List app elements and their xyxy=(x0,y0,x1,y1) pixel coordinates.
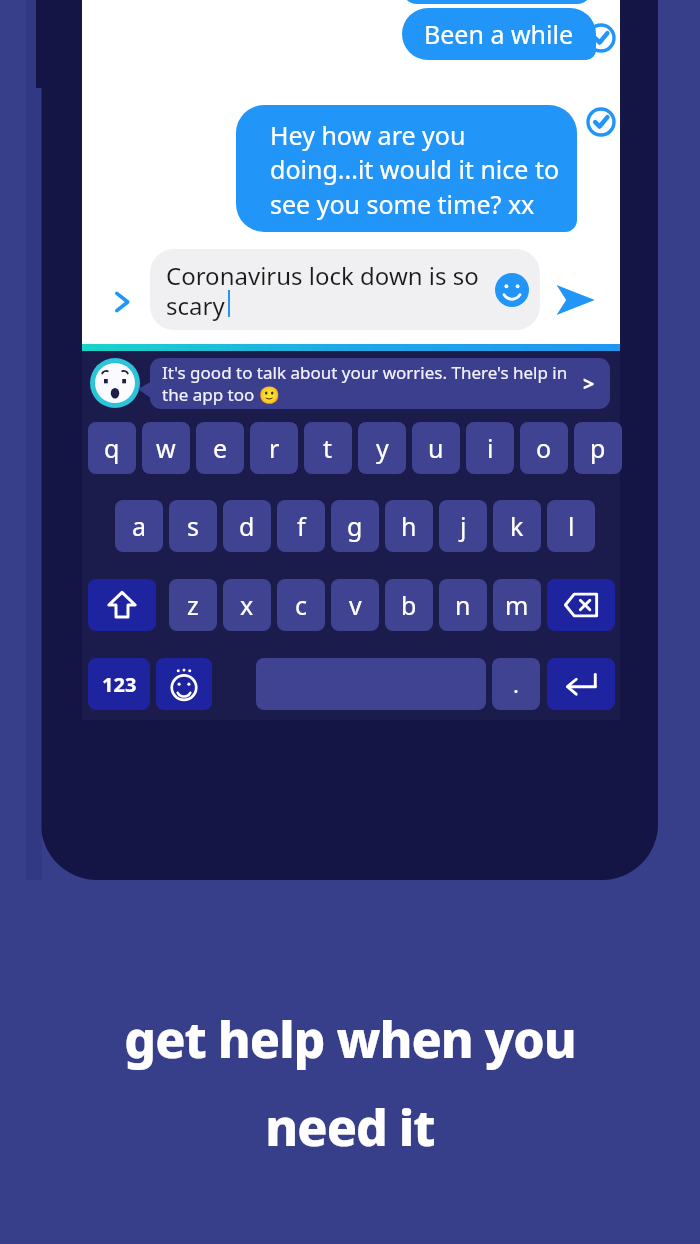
staticText: It's good to talk about your worries. Th… xyxy=(162,361,574,406)
button[interactable]: c xyxy=(277,579,325,631)
button[interactable]: Numbers xyxy=(88,658,150,710)
button[interactable]: h xyxy=(385,500,433,552)
button[interactable]: f xyxy=(277,500,325,552)
button[interactable]: d xyxy=(223,500,271,552)
staticText: p xyxy=(590,431,606,465)
staticText: 123 xyxy=(102,671,137,698)
staticText: x xyxy=(240,588,254,622)
staticText: Been a while xyxy=(424,17,574,51)
button[interactable]: t xyxy=(304,422,352,474)
button[interactable]: q xyxy=(88,422,136,474)
button[interactable]: i xyxy=(466,422,514,474)
staticText: a xyxy=(132,509,147,543)
button[interactable]: e xyxy=(196,422,244,474)
staticText: e xyxy=(213,431,228,465)
button[interactable]: p xyxy=(574,422,622,474)
staticText: g xyxy=(347,509,363,543)
staticText: u xyxy=(428,431,444,465)
staticText: Coronavirus lock down is so scary xyxy=(166,259,492,322)
button[interactable]: o xyxy=(520,422,568,474)
staticText: o xyxy=(536,431,552,465)
button[interactable]: Send xyxy=(547,272,603,328)
button[interactable]: Backspace xyxy=(547,579,615,631)
button[interactable]: a xyxy=(115,500,163,552)
staticText: q xyxy=(104,431,120,465)
staticText: need it xyxy=(265,1093,435,1161)
button[interactable]: s xyxy=(169,500,217,552)
button[interactable]: x xyxy=(223,579,271,631)
button[interactable]: l xyxy=(547,500,595,552)
button[interactable]: g xyxy=(331,500,379,552)
button[interactable]: w xyxy=(142,422,190,474)
button[interactable]: z xyxy=(169,579,217,631)
staticText: d xyxy=(239,509,255,543)
staticText: k xyxy=(510,509,524,543)
button[interactable]: n xyxy=(439,579,487,631)
staticText: . xyxy=(513,669,519,699)
staticText: y xyxy=(376,431,389,465)
button[interactable]: . xyxy=(492,658,540,710)
button[interactable]: u xyxy=(412,422,460,474)
button[interactable]: m xyxy=(493,579,541,631)
button[interactable]: Hey how are you doing...it would it nice… xyxy=(236,105,577,232)
staticText: v xyxy=(349,588,362,622)
button[interactable]: v xyxy=(331,579,379,631)
staticText: Hey how are you doing...it would it nice… xyxy=(270,118,561,222)
staticText: h xyxy=(401,509,417,543)
staticText: r xyxy=(269,431,280,465)
staticText: z xyxy=(187,588,199,622)
button[interactable]: Expand xyxy=(102,282,142,322)
button[interactable]: j xyxy=(439,500,487,552)
staticText: w xyxy=(156,431,176,465)
staticText: n xyxy=(455,588,471,622)
staticText: b xyxy=(401,588,417,622)
button[interactable]: Space xyxy=(256,658,486,710)
button[interactable]: Been a while xyxy=(402,8,596,60)
button[interactable]: It's good to talk about your worries. Th… xyxy=(150,358,610,409)
staticText: f xyxy=(297,509,306,543)
staticText: get help when you xyxy=(124,1005,576,1073)
staticText: m xyxy=(505,588,529,622)
button[interactable]: y xyxy=(358,422,406,474)
button[interactable]: Coronavirus lock down is so scary xyxy=(150,249,540,330)
staticText: c xyxy=(295,588,308,622)
button[interactable]: Emoji keyboard xyxy=(156,658,212,710)
button[interactable]: Enter xyxy=(547,658,615,710)
staticText: t xyxy=(323,431,333,465)
button[interactable]: b xyxy=(385,579,433,631)
staticText: l xyxy=(568,509,575,543)
staticText: > xyxy=(583,370,595,397)
staticText: j xyxy=(460,509,467,543)
button[interactable]: k xyxy=(493,500,541,552)
button[interactable]: r xyxy=(250,422,298,474)
staticText: s xyxy=(187,509,199,543)
button[interactable]: Shift xyxy=(88,579,156,631)
staticText: i xyxy=(487,431,494,465)
button[interactable]: Emoji xyxy=(492,270,532,310)
